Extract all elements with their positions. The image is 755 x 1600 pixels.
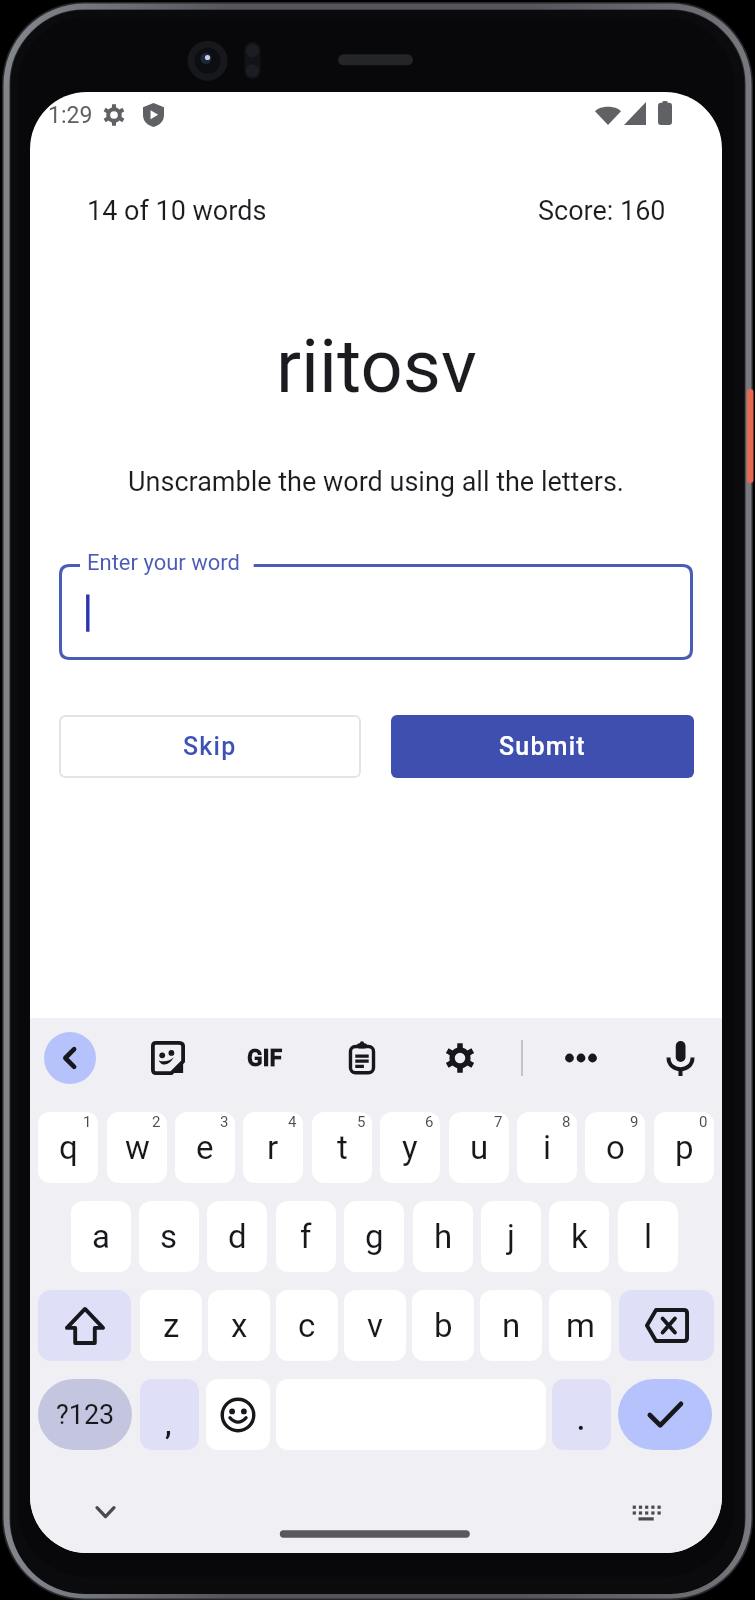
staticText: c <box>298 1306 316 1345</box>
staticText: y <box>402 1128 418 1167</box>
button[interactable]: Shift <box>38 1290 131 1361</box>
button[interactable]: z <box>140 1290 202 1361</box>
staticText: 8 <box>562 1113 571 1131</box>
staticText: r <box>267 1128 279 1167</box>
button[interactable]: l <box>618 1201 678 1272</box>
staticText: 4 <box>288 1113 297 1131</box>
button[interactable]: j <box>481 1201 541 1272</box>
button[interactable]: ?123 <box>38 1379 132 1450</box>
button[interactable]: Comma <box>140 1379 199 1450</box>
staticText: u <box>470 1128 489 1167</box>
staticText: , <box>165 1409 172 1441</box>
staticText: Enter your word <box>87 550 241 576</box>
button[interactable]: u <box>449 1112 509 1183</box>
staticText: Unscramble the word using all the letter… <box>128 466 624 498</box>
button[interactable]: t <box>312 1112 372 1183</box>
staticText: i <box>543 1128 552 1167</box>
button[interactable]: y <box>380 1112 440 1183</box>
staticText: o <box>606 1128 625 1167</box>
button[interactable]: x <box>208 1290 270 1361</box>
button[interactable]: r <box>243 1112 303 1183</box>
button[interactable]: Emoji <box>206 1379 270 1450</box>
staticText: x <box>231 1306 248 1345</box>
button[interactable]: k <box>549 1201 609 1272</box>
staticText: 3 <box>220 1113 229 1131</box>
button[interactable]: c <box>276 1290 338 1361</box>
button[interactable]: n <box>480 1290 542 1361</box>
staticText: Score: 160 <box>538 195 666 227</box>
staticText: 1:29 <box>48 102 93 129</box>
button[interactable]: Submit <box>391 715 694 778</box>
staticText: ?123 <box>56 1399 115 1431</box>
button[interactable]: Skip <box>59 715 361 778</box>
staticText: q <box>59 1128 78 1167</box>
button[interactable]: a <box>71 1201 131 1272</box>
button[interactable]: Clipboard <box>332 1034 392 1082</box>
button[interactable]: Period <box>552 1379 611 1450</box>
button[interactable]: b <box>412 1290 474 1361</box>
staticText: e <box>196 1128 214 1167</box>
staticText: riitosv <box>276 323 477 410</box>
button[interactable]: w <box>107 1112 167 1183</box>
button[interactable]: q <box>38 1112 98 1183</box>
staticText: z <box>163 1306 180 1345</box>
staticText: j <box>507 1217 515 1256</box>
staticText: GIF <box>247 1045 282 1072</box>
staticText: k <box>571 1217 588 1256</box>
button[interactable]: e <box>175 1112 235 1183</box>
staticText: p <box>675 1128 694 1167</box>
staticText: f <box>300 1217 312 1256</box>
button[interactable]: s <box>139 1201 199 1272</box>
staticText: 14 of 10 words <box>87 195 267 227</box>
button[interactable]: Enter <box>618 1379 712 1450</box>
staticText: 9 <box>630 1113 639 1131</box>
button[interactable]: GIF <box>234 1036 294 1080</box>
button[interactable]: m <box>549 1290 611 1361</box>
button[interactable]: p <box>654 1112 714 1183</box>
staticText: 6 <box>425 1113 434 1131</box>
staticText: g <box>365 1217 384 1256</box>
staticText: n <box>502 1306 521 1345</box>
button[interactable]: d <box>207 1201 267 1272</box>
staticText: l <box>644 1217 653 1256</box>
button[interactable]: h <box>413 1201 473 1272</box>
staticText: m <box>566 1306 595 1345</box>
button[interactable]: Voice input <box>650 1034 710 1082</box>
staticText: Submit <box>499 732 586 761</box>
staticText: v <box>367 1306 383 1345</box>
staticText: a <box>92 1217 110 1256</box>
staticText: s <box>160 1217 178 1256</box>
staticText: 0 <box>699 1113 708 1131</box>
staticText: d <box>228 1217 247 1256</box>
button[interactable]: Stickers <box>138 1034 198 1082</box>
staticText: 1 <box>83 1113 92 1131</box>
staticText: h <box>434 1217 453 1256</box>
button[interactable]: v <box>344 1290 406 1361</box>
staticText: 2 <box>152 1113 161 1131</box>
staticText: w <box>125 1128 150 1167</box>
button[interactable]: Settings <box>430 1034 490 1082</box>
button[interactable]: f <box>276 1201 336 1272</box>
button[interactable]: Backspace <box>619 1290 714 1361</box>
button[interactable]: o <box>585 1112 645 1183</box>
button[interactable]: g <box>344 1201 404 1272</box>
button[interactable]: i <box>517 1112 577 1183</box>
staticText: 7 <box>494 1113 503 1131</box>
button[interactable]: Back <box>44 1032 96 1084</box>
staticText: . <box>577 1405 585 1437</box>
staticText: b <box>434 1306 453 1345</box>
staticText: t <box>337 1128 348 1167</box>
staticText: Skip <box>183 732 237 761</box>
button[interactable]: More options <box>551 1034 611 1082</box>
staticText: 5 <box>357 1113 366 1131</box>
